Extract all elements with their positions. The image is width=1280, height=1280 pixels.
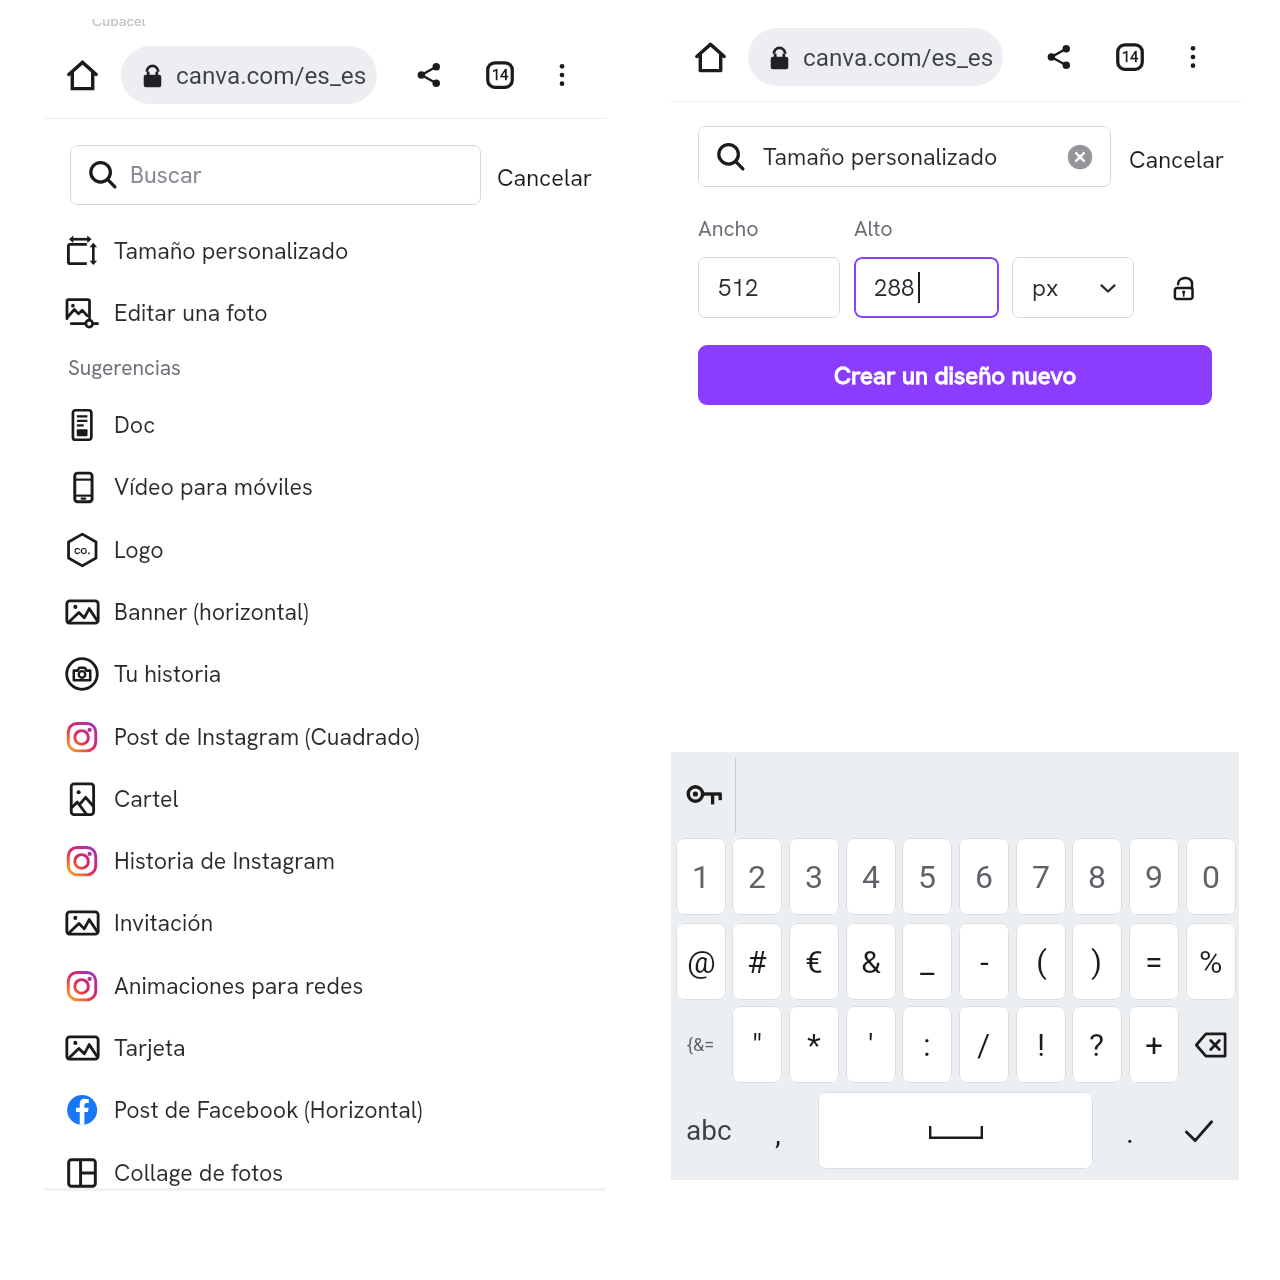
button[interactable]: Collage de fotos <box>0 1142 640 1204</box>
button[interactable]: - <box>959 923 1009 1000</box>
staticText: 14 <box>492 66 508 84</box>
button[interactable]: Vídeo para móviles <box>0 456 640 518</box>
button[interactable]: co. <box>0 519 640 581</box>
staticText: 5 <box>918 858 936 896</box>
staticText: 512 <box>718 272 759 303</box>
button[interactable]: 8 <box>1072 838 1122 915</box>
button[interactable]: . <box>1115 1092 1145 1169</box>
button[interactable]: , <box>763 1092 793 1169</box>
staticText: . <box>1126 1115 1134 1150</box>
staticText: {&= <box>687 1034 715 1055</box>
button[interactable]: ( <box>1016 923 1066 1000</box>
button[interactable]: # <box>732 923 782 1000</box>
button[interactable]: = <box>1129 923 1179 1000</box>
staticText: , <box>775 1116 781 1151</box>
staticText: : <box>923 1026 931 1064</box>
staticText: Cartel <box>114 784 179 814</box>
button[interactable]: Post de Facebook (Horizontal) <box>0 1079 640 1141</box>
button[interactable]: Cancelar <box>493 158 597 197</box>
staticText: 2 <box>748 858 766 896</box>
button[interactable]: Post de Instagram (Cuadrado) <box>0 706 640 768</box>
button[interactable]: _ <box>902 923 952 1000</box>
button[interactable]: More options <box>1171 35 1215 79</box>
staticText: Logo <box>114 535 164 565</box>
staticText: Crear un diseño nuevo <box>834 360 1077 391</box>
button[interactable]: 3 <box>789 838 839 915</box>
button[interactable]: & <box>846 923 896 1000</box>
button[interactable]: Tamaño personalizado <box>698 126 1111 187</box>
staticText: # <box>747 943 767 981</box>
button[interactable]: Enter <box>1174 1092 1224 1169</box>
button[interactable]: px <box>1012 257 1134 318</box>
button[interactable]: Cartel <box>0 768 640 830</box>
button[interactable]: {&= <box>676 1006 726 1083</box>
button[interactable]: 0 <box>1186 838 1236 915</box>
button[interactable]: Tabs <box>1108 35 1152 79</box>
button[interactable]: Backspace <box>1186 1006 1236 1083</box>
button[interactable]: abc <box>684 1092 734 1169</box>
button[interactable]: Unlock aspect ratio <box>1171 272 1201 302</box>
button[interactable]: 4 <box>846 838 896 915</box>
button[interactable]: Invitación <box>0 892 640 954</box>
button[interactable]: ! <box>1016 1006 1066 1083</box>
button[interactable]: Buscar <box>70 145 481 205</box>
button[interactable]: canva.com/es_es <box>121 46 377 104</box>
staticText: 6 <box>975 858 993 896</box>
button[interactable]: 1 <box>676 838 726 915</box>
staticText: * <box>807 1026 821 1064</box>
button[interactable]: canva.com/es_es <box>748 28 1003 86</box>
staticText: 4 <box>862 858 880 896</box>
button[interactable]: ' <box>846 1006 896 1083</box>
button[interactable]: 9 <box>1129 838 1179 915</box>
button[interactable]: 2 <box>732 838 782 915</box>
button[interactable]: * <box>789 1006 839 1083</box>
button[interactable]: € <box>789 923 839 1000</box>
staticText: & <box>861 943 881 981</box>
button[interactable]: Space <box>818 1092 1093 1169</box>
staticText: Post de Instagram (Cuadrado) <box>114 722 420 752</box>
button[interactable]: Share <box>1037 35 1081 79</box>
staticText: = <box>1145 943 1163 981</box>
staticText: abc <box>686 1114 732 1147</box>
button[interactable]: Cancelar <box>1125 140 1229 179</box>
button[interactable]: Home <box>60 53 104 97</box>
staticText: ) <box>1091 943 1103 981</box>
button[interactable]: Tu historia <box>0 643 640 705</box>
button[interactable]: Clear search <box>1065 142 1095 172</box>
staticText: canva.com/es_es <box>176 61 367 89</box>
staticText: Tamaño personalizado <box>114 236 349 266</box>
button[interactable]: " <box>732 1006 782 1083</box>
staticText: Cubacel <box>92 11 146 30</box>
button[interactable]: Banner (horizontal) <box>0 581 640 643</box>
button[interactable]: Share <box>407 53 451 97</box>
button[interactable]: Tamaño personalizado <box>0 220 640 282</box>
button[interactable]: Saved passwords <box>673 753 737 837</box>
button[interactable]: ? <box>1072 1006 1122 1083</box>
staticText: 14 <box>1122 48 1138 66</box>
button[interactable]: 512 <box>698 257 840 318</box>
button[interactable]: 288 <box>854 257 999 318</box>
button[interactable]: Doc <box>0 394 640 456</box>
button[interactable]: @ <box>676 923 726 1000</box>
button[interactable]: Tarjeta <box>0 1017 640 1079</box>
button[interactable]: 5 <box>902 838 952 915</box>
button[interactable]: Home <box>688 35 732 79</box>
staticText: - <box>980 943 989 981</box>
button[interactable]: 6 <box>959 838 1009 915</box>
button[interactable]: Crear un diseño nuevo <box>698 345 1212 405</box>
button[interactable]: % <box>1186 923 1236 1000</box>
button[interactable]: Editar una foto <box>0 282 640 344</box>
button[interactable]: : <box>902 1006 952 1083</box>
button[interactable]: Animaciones para redes <box>0 955 640 1017</box>
button[interactable]: More options <box>540 53 584 97</box>
staticText: Historia de Instagram <box>114 846 336 876</box>
button[interactable]: Historia de Instagram <box>0 830 640 892</box>
button[interactable]: 7 <box>1016 838 1066 915</box>
staticText: 1 <box>692 858 710 896</box>
staticText: + <box>1145 1026 1164 1064</box>
button[interactable]: Tabs <box>478 53 522 97</box>
button[interactable]: + <box>1129 1006 1179 1083</box>
button[interactable]: ) <box>1072 923 1122 1000</box>
button[interactable]: / <box>959 1006 1009 1083</box>
staticText: 7 <box>1032 858 1050 896</box>
